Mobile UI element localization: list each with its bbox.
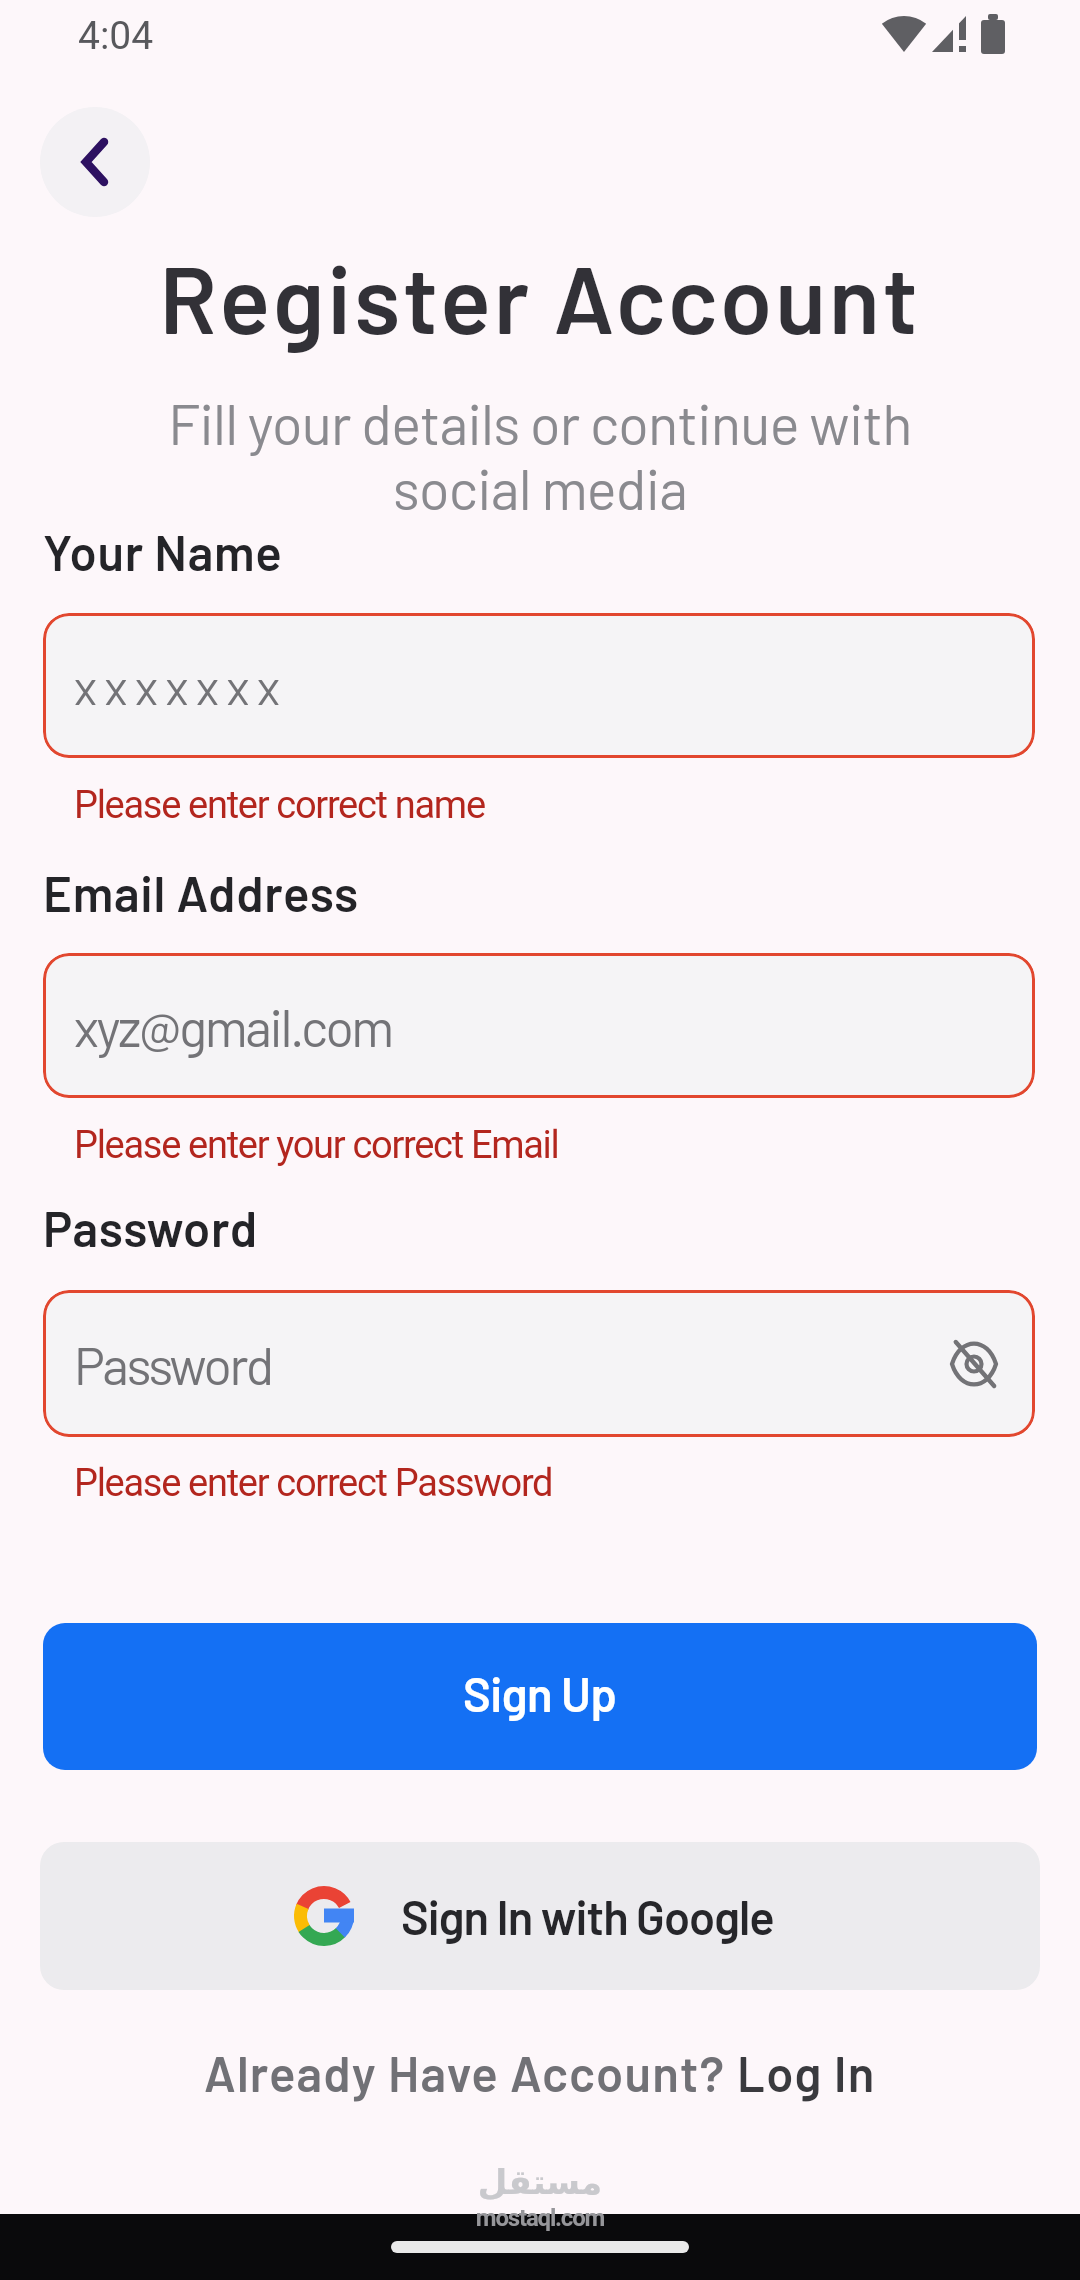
button[interactable]: Sign In with Google (40, 1842, 1040, 1990)
button[interactable]: xyz@gmail.com (43, 953, 1035, 1098)
staticText: Please enter correct Password (74, 1461, 553, 1506)
staticText: Fill your details or continue with socia… (90, 389, 990, 521)
button[interactable]: Already Have Account? (0, 2043, 1080, 2102)
staticText: Your Name (43, 522, 283, 581)
staticText: Register Account (0, 240, 1080, 353)
staticText: مستقل (0, 2162, 1080, 2202)
staticText: Please enter your correct Email (74, 1123, 559, 1168)
button[interactable]: Sign Up (43, 1623, 1037, 1770)
staticText: Please enter correct name (74, 783, 485, 828)
button[interactable]: Password (43, 1290, 1035, 1437)
staticText: Sign Up (463, 1665, 617, 1721)
staticText: xyz@gmail.com (74, 995, 392, 1057)
staticText: Password (43, 1198, 258, 1257)
staticText: Log In (737, 2043, 876, 2102)
button[interactable]: x x x x x x x (43, 613, 1035, 758)
staticText: 4:04 (78, 13, 154, 59)
staticText: x x x x x x x (74, 657, 279, 715)
staticText: Email Address (43, 863, 359, 922)
button[interactable] (40, 107, 150, 217)
staticText: Password (74, 1333, 272, 1395)
staticText: mostaql.com (0, 2204, 1080, 2232)
staticText: Sign In with Google (401, 1888, 774, 1944)
staticText: Already Have Account? (204, 2043, 737, 2102)
